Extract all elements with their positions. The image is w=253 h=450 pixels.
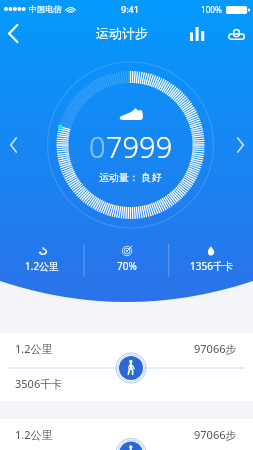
button[interactable]: Previous day (0, 132, 26, 158)
staticText: 7999 (106, 127, 173, 166)
button[interactable]: Statistics (184, 21, 210, 47)
button[interactable]: Next day (227, 132, 253, 158)
staticText: 1.2公里 (15, 341, 53, 356)
staticText: 运动量： 良好 (99, 170, 162, 184)
button[interactable]: 1356千卡 (169, 240, 253, 278)
button[interactable]: Device (223, 21, 249, 47)
staticText: 0 (89, 127, 106, 166)
staticText: 3506千卡 (15, 376, 63, 391)
staticText: 100% (201, 4, 222, 15)
button[interactable]: 1.2公里 (0, 419, 253, 450)
button[interactable]: Back (0, 20, 26, 46)
staticText: 1.2公里 (25, 259, 60, 273)
staticText: 运动计步 (96, 25, 148, 41)
staticText: 9:41 (121, 3, 139, 15)
staticText: 70% (117, 259, 137, 273)
staticText: 1356千卡 (190, 259, 233, 273)
button[interactable]: 1.2公里 (0, 333, 253, 401)
staticText: 97066步 (194, 341, 237, 356)
button[interactable]: 1.2公里 (0, 240, 85, 278)
staticText: 1.2公里 (15, 427, 53, 442)
staticText: 中国电信 (29, 4, 62, 14)
staticText: 97066步 (194, 427, 237, 442)
button[interactable]: 70% (85, 240, 169, 278)
